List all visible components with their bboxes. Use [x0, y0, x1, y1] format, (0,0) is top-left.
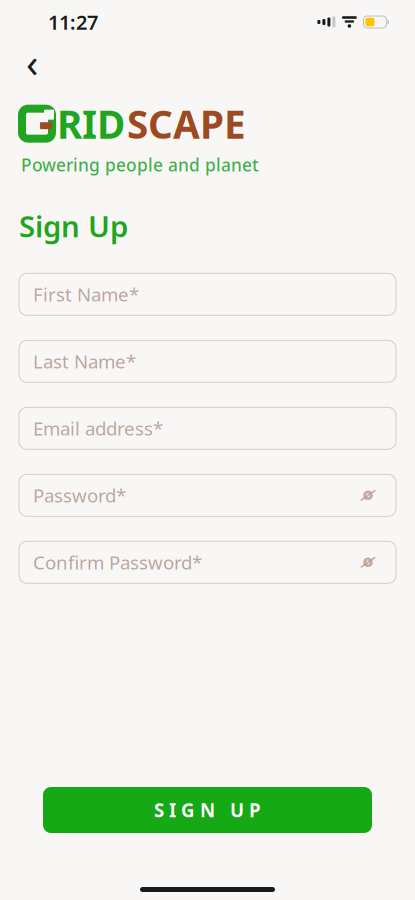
- button[interactable]: Last Name*: [19, 340, 396, 382]
- staticText: ‹: [26, 35, 38, 88]
- button[interactable]: Confirm Password*: [19, 541, 396, 583]
- staticText: Last Name*: [33, 349, 136, 374]
- staticText: 11:27: [48, 9, 98, 35]
- staticText: Email address*: [33, 416, 163, 441]
- button[interactable]: S I G N U P: [43, 787, 372, 833]
- button[interactable]: Email address*: [19, 407, 396, 449]
- button[interactable]: First Name*: [19, 273, 396, 315]
- staticText: RID: [57, 98, 125, 149]
- staticText: Powering people and planet: [21, 153, 259, 176]
- staticText: S I G N U P: [154, 798, 261, 822]
- staticText: First Name*: [33, 282, 139, 307]
- staticText: Sign Up: [19, 206, 128, 245]
- button[interactable]: Password*: [19, 474, 396, 516]
- staticText: Confirm Password*: [33, 550, 202, 575]
- staticText: SCAPE: [127, 98, 246, 149]
- staticText: Password*: [33, 483, 126, 508]
- button[interactable]: Back: [10, 44, 54, 80]
